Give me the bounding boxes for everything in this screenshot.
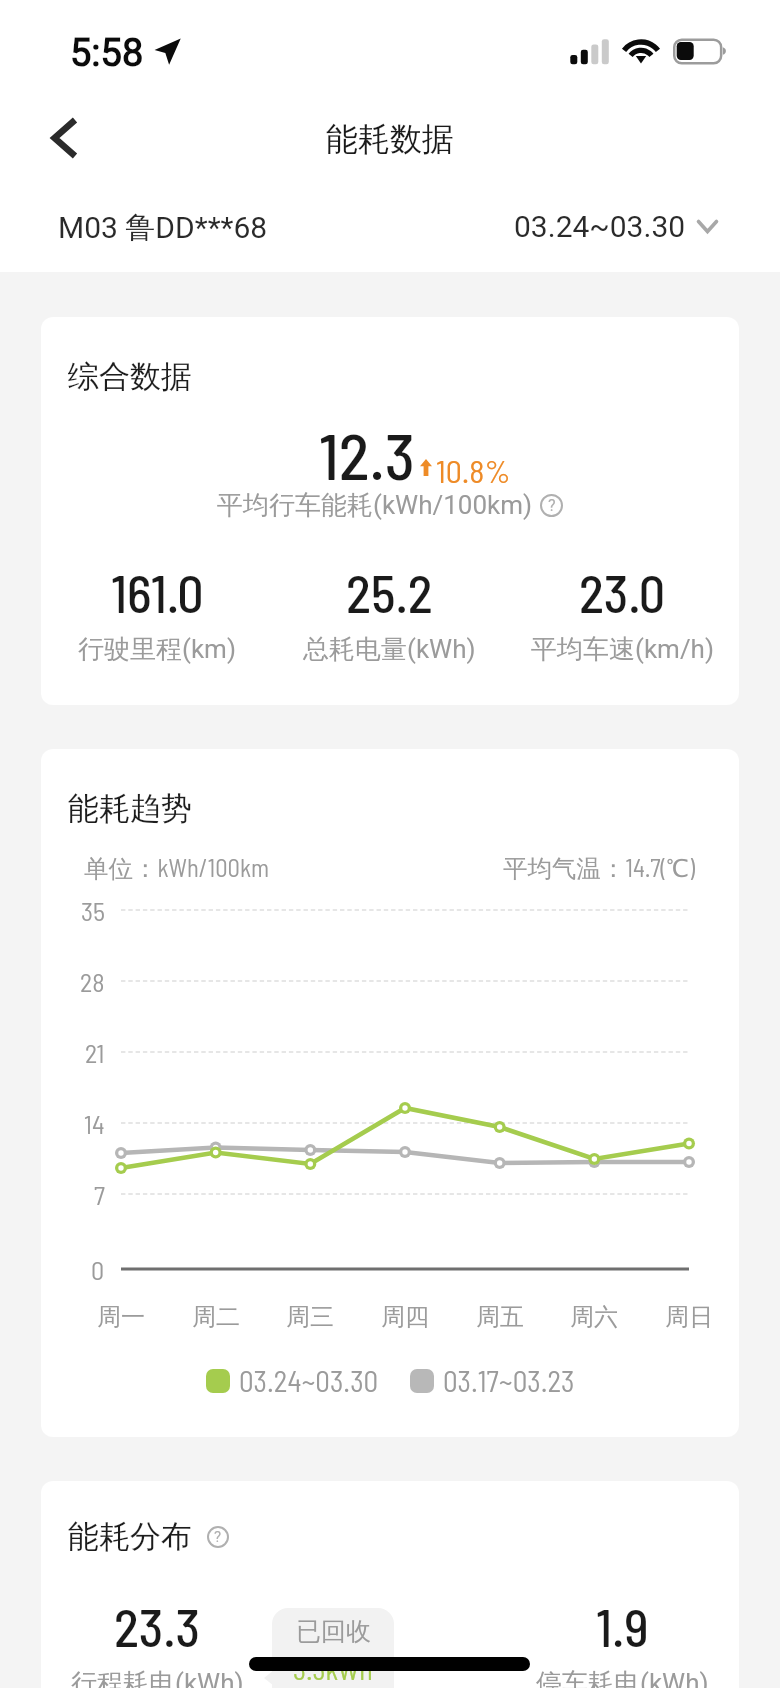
staticText: 28 [80, 966, 105, 997]
button[interactable]: Back [26, 98, 102, 178]
staticText: 平均车速(km/h) [531, 633, 714, 666]
staticText: 5:58 [70, 31, 144, 76]
staticText: 周二 [192, 1302, 240, 1332]
staticText: 12.3 [319, 416, 415, 493]
staticText: 14 [84, 1108, 105, 1139]
staticText: 7 [94, 1179, 105, 1210]
staticText: 周五 [476, 1302, 524, 1332]
staticText: 平均气温：14.7(℃) [503, 852, 695, 884]
staticText: 10.8% [436, 451, 511, 489]
staticText: 35 [81, 895, 105, 926]
staticText: 综合数据 [68, 357, 192, 396]
staticText: 行驶里程(km) [78, 633, 236, 666]
staticText: ? [214, 1528, 222, 1546]
staticText: 03.17~03.23 [443, 1363, 575, 1398]
staticText: 周三 [286, 1302, 334, 1332]
staticText: 周四 [381, 1302, 429, 1332]
staticText: 周六 [570, 1302, 618, 1332]
staticText: 能耗分布 [68, 1517, 192, 1556]
staticText: 能耗趋势 [68, 789, 192, 828]
staticText: 单位：kWh/100km [84, 852, 270, 884]
staticText: 能耗数据 [326, 119, 454, 159]
staticText: 周日 [665, 1302, 713, 1332]
staticText: 行程耗电(kWh) [71, 1667, 244, 1688]
staticText: 23.0 [579, 561, 666, 623]
staticText: 总耗电量(kWh) [303, 633, 476, 666]
staticText: 03.24~03.30 [514, 209, 686, 244]
staticText: 停车耗电(kWh) [536, 1667, 709, 1688]
staticText: 21 [85, 1037, 105, 1068]
staticText: ? [548, 496, 556, 515]
staticText: 25.2 [346, 561, 433, 623]
staticText: 平均行车能耗(kWh/100km) [217, 489, 533, 522]
staticText: 1.9 [596, 1595, 649, 1657]
staticText: 03.24~03.30 [239, 1363, 379, 1398]
button[interactable]: 03.24~03.30 [514, 209, 718, 244]
staticText: M03 鲁DD***68 [58, 209, 268, 247]
staticText: 周一 [97, 1302, 145, 1332]
staticText: 161.0 [111, 561, 204, 623]
staticText: 23.3 [114, 1595, 201, 1657]
staticText: 已回收 [296, 1616, 371, 1647]
staticText: 0 [91, 1254, 105, 1285]
staticText: 3.3kWh [293, 1652, 373, 1686]
